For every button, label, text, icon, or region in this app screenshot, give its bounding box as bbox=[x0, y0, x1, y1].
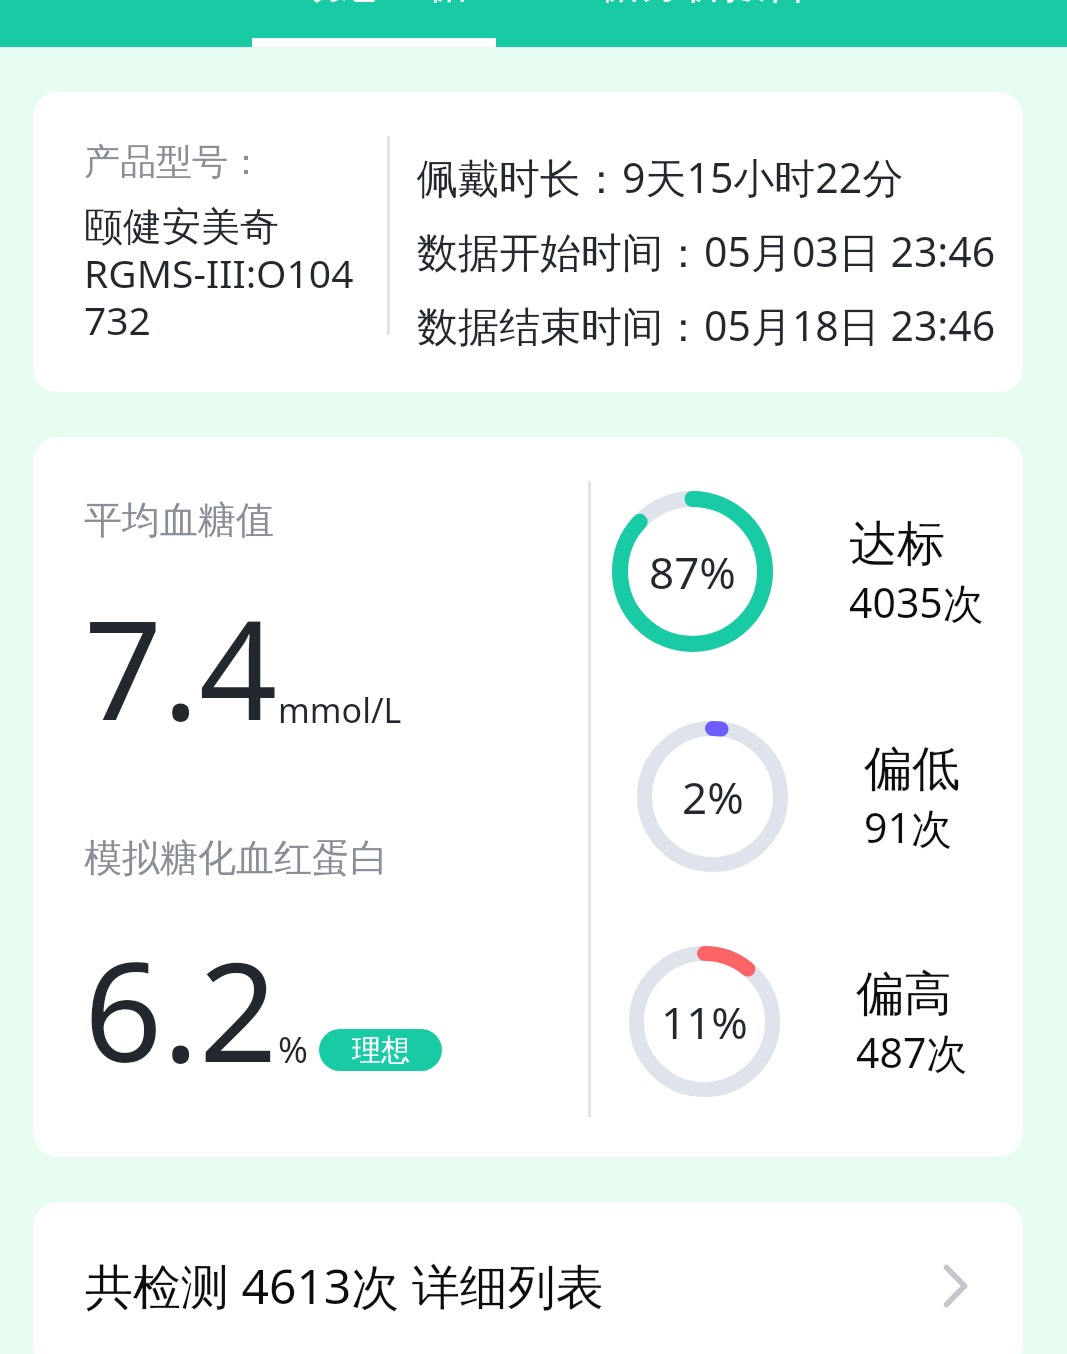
staticText: 达标 bbox=[849, 514, 945, 574]
staticText: 6.2 bbox=[84, 916, 278, 1103]
staticText: 模拟糖化血红蛋白 bbox=[84, 834, 388, 882]
staticText: mmol/L bbox=[278, 687, 402, 733]
staticText: 理想 bbox=[352, 1032, 410, 1069]
button[interactable]: 共检测 4613次 详细列表 bbox=[33, 1202, 1023, 1354]
button[interactable]: 血糖分析报告 bbox=[522, 0, 842, 4]
staticText: 平均血糖值 bbox=[84, 496, 274, 544]
staticText: 共检测 4613次 详细列表 bbox=[85, 1253, 604, 1319]
staticText: 血糖分析报告 bbox=[556, 0, 808, 4]
button[interactable]: 动态血糖 bbox=[262, 0, 506, 4]
staticText: % bbox=[278, 1025, 308, 1074]
staticText: 91次 bbox=[864, 799, 952, 855]
staticText: 动态血糖 bbox=[300, 0, 468, 4]
other: 查看详细列表 bbox=[943, 1264, 968, 1308]
staticText: 产品型号： bbox=[84, 139, 264, 184]
staticText: 2% bbox=[682, 767, 744, 827]
staticText: 487次 bbox=[856, 1024, 968, 1080]
staticText: 11% bbox=[661, 992, 748, 1052]
staticText: 偏高 bbox=[856, 964, 952, 1024]
staticText: 4035次 bbox=[849, 574, 984, 630]
staticText: 7.4 bbox=[84, 574, 278, 761]
staticText: 87% bbox=[649, 542, 736, 602]
staticText: 颐健安美奇 RGMS-III:O104 732 bbox=[84, 202, 354, 346]
staticText: 佩戴时长：9天15小时22分 数据开始时间：05月03日 23:46 数据结束时… bbox=[417, 149, 996, 353]
staticText: 偏低 bbox=[864, 739, 960, 799]
